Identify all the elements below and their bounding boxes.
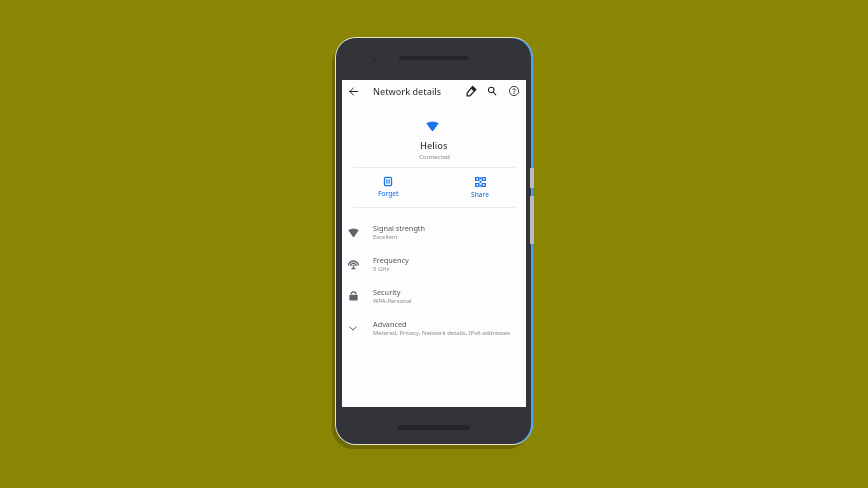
button[interactable]: Forget — [342, 168, 434, 207]
button[interactable]: Back — [343, 81, 364, 102]
button[interactable]: Edit — [461, 80, 482, 101]
staticText: Advanced — [373, 319, 407, 329]
staticText: WPA-Personal — [373, 297, 412, 305]
button[interactable]: Help — [503, 80, 524, 101]
button[interactable]: Advanced — [342, 312, 526, 344]
staticText: Frequency — [373, 255, 409, 265]
staticText: Network details — [373, 85, 442, 97]
button[interactable]: Signal strength — [342, 216, 526, 248]
button[interactable]: Share — [434, 168, 526, 207]
button[interactable]: Security — [342, 280, 526, 312]
staticText: Share — [471, 190, 489, 199]
button[interactable]: Search — [481, 80, 502, 101]
staticText: 5 GHz — [373, 265, 390, 273]
staticText: Connected — [419, 152, 450, 160]
staticText: Forget — [378, 189, 399, 198]
staticText: Metered, Privacy, Network details, IPv6 … — [373, 329, 511, 337]
staticText: Security — [373, 287, 401, 297]
staticText: Signal strength — [373, 223, 426, 233]
button[interactable]: Frequency — [342, 248, 526, 280]
staticText: Helios — [420, 139, 448, 152]
staticText: Excellent — [373, 233, 398, 241]
